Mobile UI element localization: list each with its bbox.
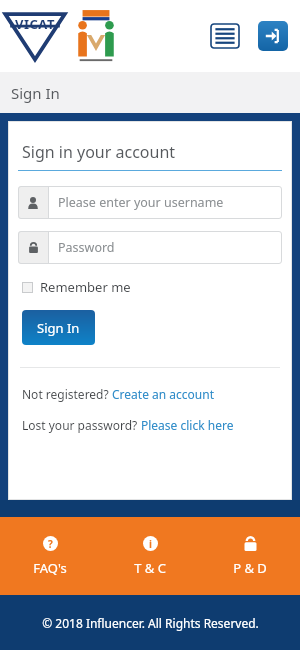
staticText: Sign In — [11, 83, 60, 103]
staticText: VICAT — [15, 15, 55, 33]
button[interactable]: Sign In — [258, 21, 288, 51]
staticText: Sign In — [37, 319, 80, 337]
staticText: © 2018 Influencer. All Rights Reserved. — [42, 615, 259, 631]
staticText: Password — [58, 239, 115, 256]
staticText: FAQ's — [33, 559, 67, 577]
staticText: Create an account — [112, 386, 214, 402]
staticText: T & C — [134, 559, 166, 577]
button[interactable]: Please enter your username — [18, 186, 282, 219]
button[interactable]: P & D — [200, 517, 300, 595]
button[interactable]: Remember me — [22, 278, 131, 296]
button[interactable]: Lost your password? — [22, 417, 234, 433]
staticText: i — [149, 537, 152, 551]
staticText: Remember me — [40, 278, 131, 296]
button[interactable]: i — [100, 517, 200, 595]
button[interactable]: Not registered? — [22, 386, 214, 402]
staticText: Please click here — [141, 417, 234, 433]
staticText: Sign in your account — [22, 141, 176, 163]
staticText: Lost your password? — [22, 417, 141, 433]
button[interactable]: Sign In — [22, 310, 95, 345]
button[interactable]: Menu — [208, 21, 242, 51]
button[interactable]: Password — [18, 231, 282, 264]
staticText: Please enter your username — [58, 194, 224, 211]
staticText: ? — [48, 537, 53, 551]
staticText: Not registered? — [22, 386, 112, 402]
staticText: P & D — [233, 559, 267, 577]
button[interactable]: ? — [0, 517, 100, 595]
